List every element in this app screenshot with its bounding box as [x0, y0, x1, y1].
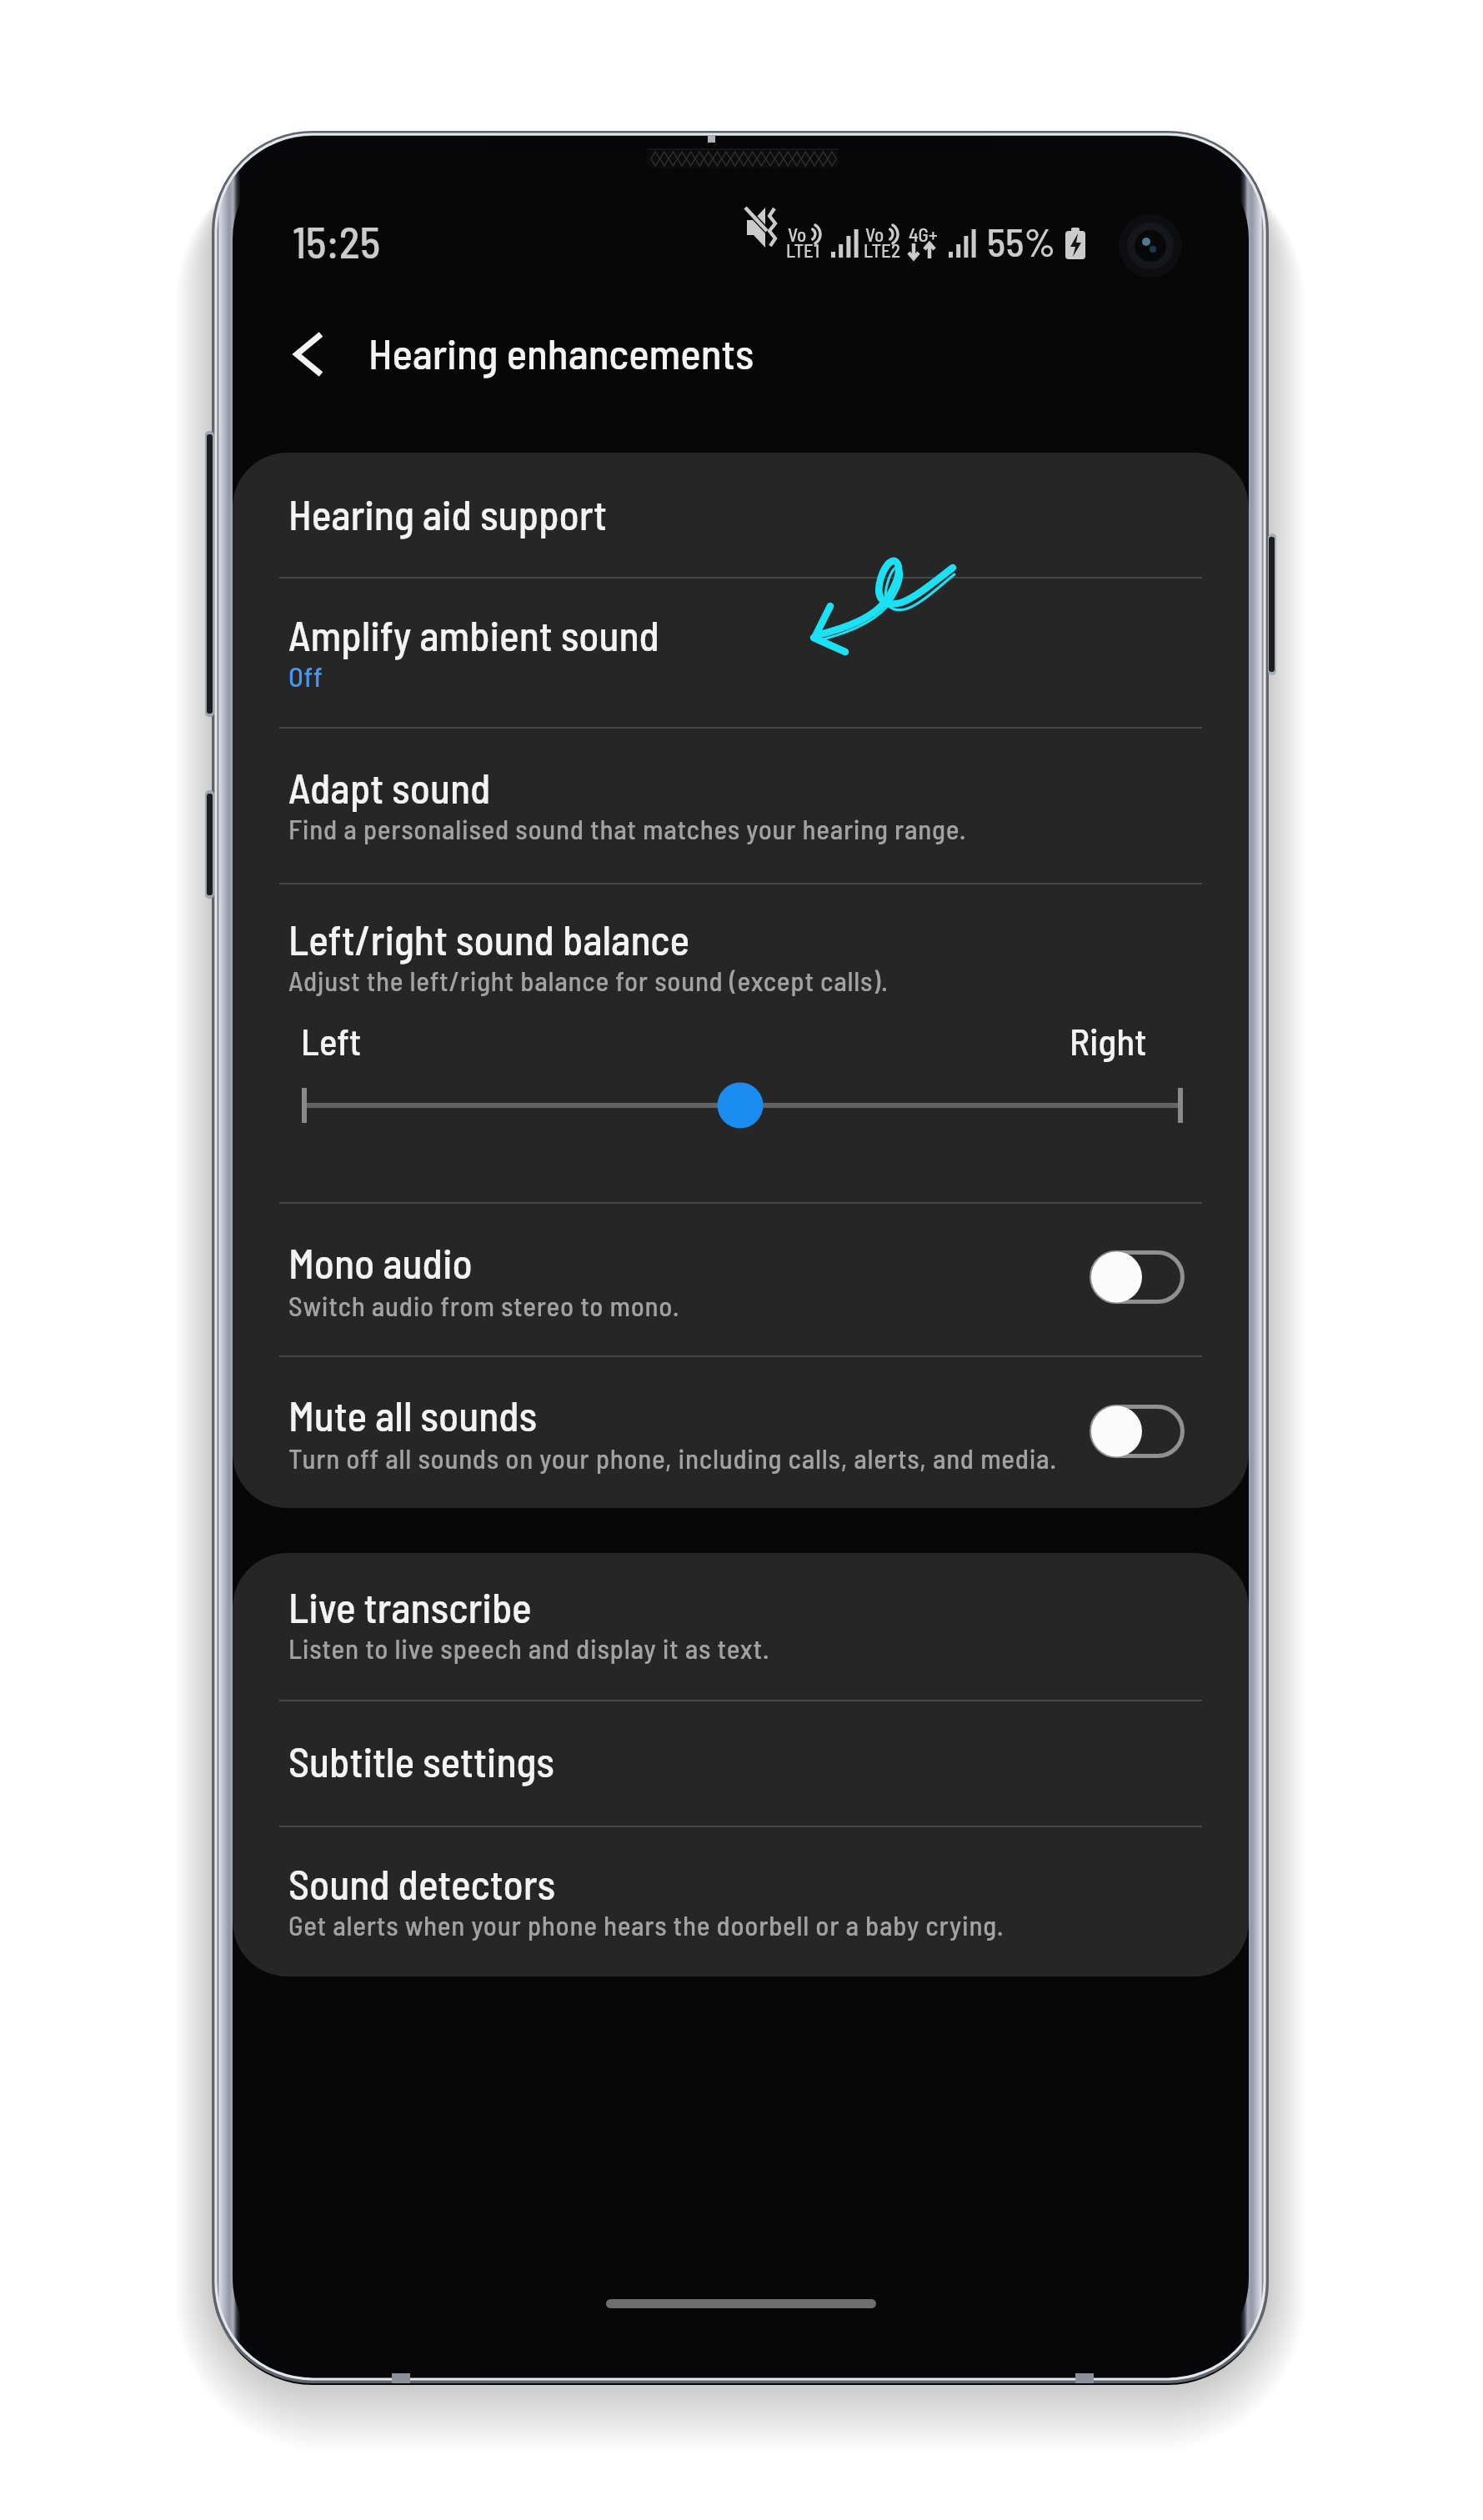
staticText: Hearing aid support: [288, 488, 607, 538]
staticText: Left/right sound balance: [288, 914, 690, 963]
button[interactable]: Left/right sound balance: [233, 883, 1249, 1202]
button[interactable]: Mono audio, off: [1090, 1250, 1185, 1304]
staticText: Turn off all sounds on your phone, inclu…: [288, 1441, 1057, 1475]
staticText: LTE1: [786, 238, 820, 262]
button[interactable]: Adapt sound: [233, 727, 1249, 883]
button[interactable]: Mute all sounds: [233, 1355, 1249, 1508]
staticText: Get alerts when your phone hears the doo…: [288, 1908, 1005, 1941]
staticText: Vo: [788, 223, 807, 246]
button[interactable]: Hearing aid support: [233, 453, 1249, 577]
button[interactable]: Live transcribe: [233, 1553, 1249, 1700]
staticText: Adapt sound: [288, 762, 491, 811]
button[interactable]: Amplify ambient sound: [233, 577, 1249, 727]
staticText: Subtitle settings: [288, 1736, 554, 1785]
button[interactable]: Sound balance slider: [283, 1074, 1200, 1140]
staticText: Hearing enhancements: [368, 327, 754, 378]
button[interactable]: Mute all sounds, off: [1090, 1405, 1185, 1458]
staticText: Listen to live speech and display it as …: [288, 1631, 770, 1665]
staticText: Mono audio: [288, 1237, 473, 1286]
staticText: 15:25: [293, 215, 381, 267]
button[interactable]: Subtitle settings: [233, 1700, 1249, 1826]
staticText: Off: [288, 659, 323, 693]
button[interactable]: Mono audio: [233, 1202, 1249, 1355]
staticText: Mute all sounds: [288, 1390, 538, 1439]
button[interactable]: Navigate up: [259, 315, 351, 407]
button[interactable]: Sound detectors: [233, 1826, 1249, 1976]
staticText: Live transcribe: [288, 1581, 532, 1631]
staticText: Switch audio from stereo to mono.: [288, 1289, 680, 1322]
staticText: 4G+: [909, 223, 938, 246]
staticText: Left: [301, 1018, 362, 1063]
staticText: Adjust the left/right balance for sound …: [288, 964, 889, 997]
staticText: LTE2: [864, 238, 900, 262]
staticText: Vo: [865, 223, 884, 246]
staticText: 55%: [987, 218, 1056, 264]
staticText: Right: [1070, 1018, 1147, 1063]
staticText: Sound detectors: [288, 1858, 556, 1907]
staticText: Find a personalised sound that matches y…: [288, 812, 967, 845]
staticText: Amplify ambient sound: [288, 609, 659, 659]
